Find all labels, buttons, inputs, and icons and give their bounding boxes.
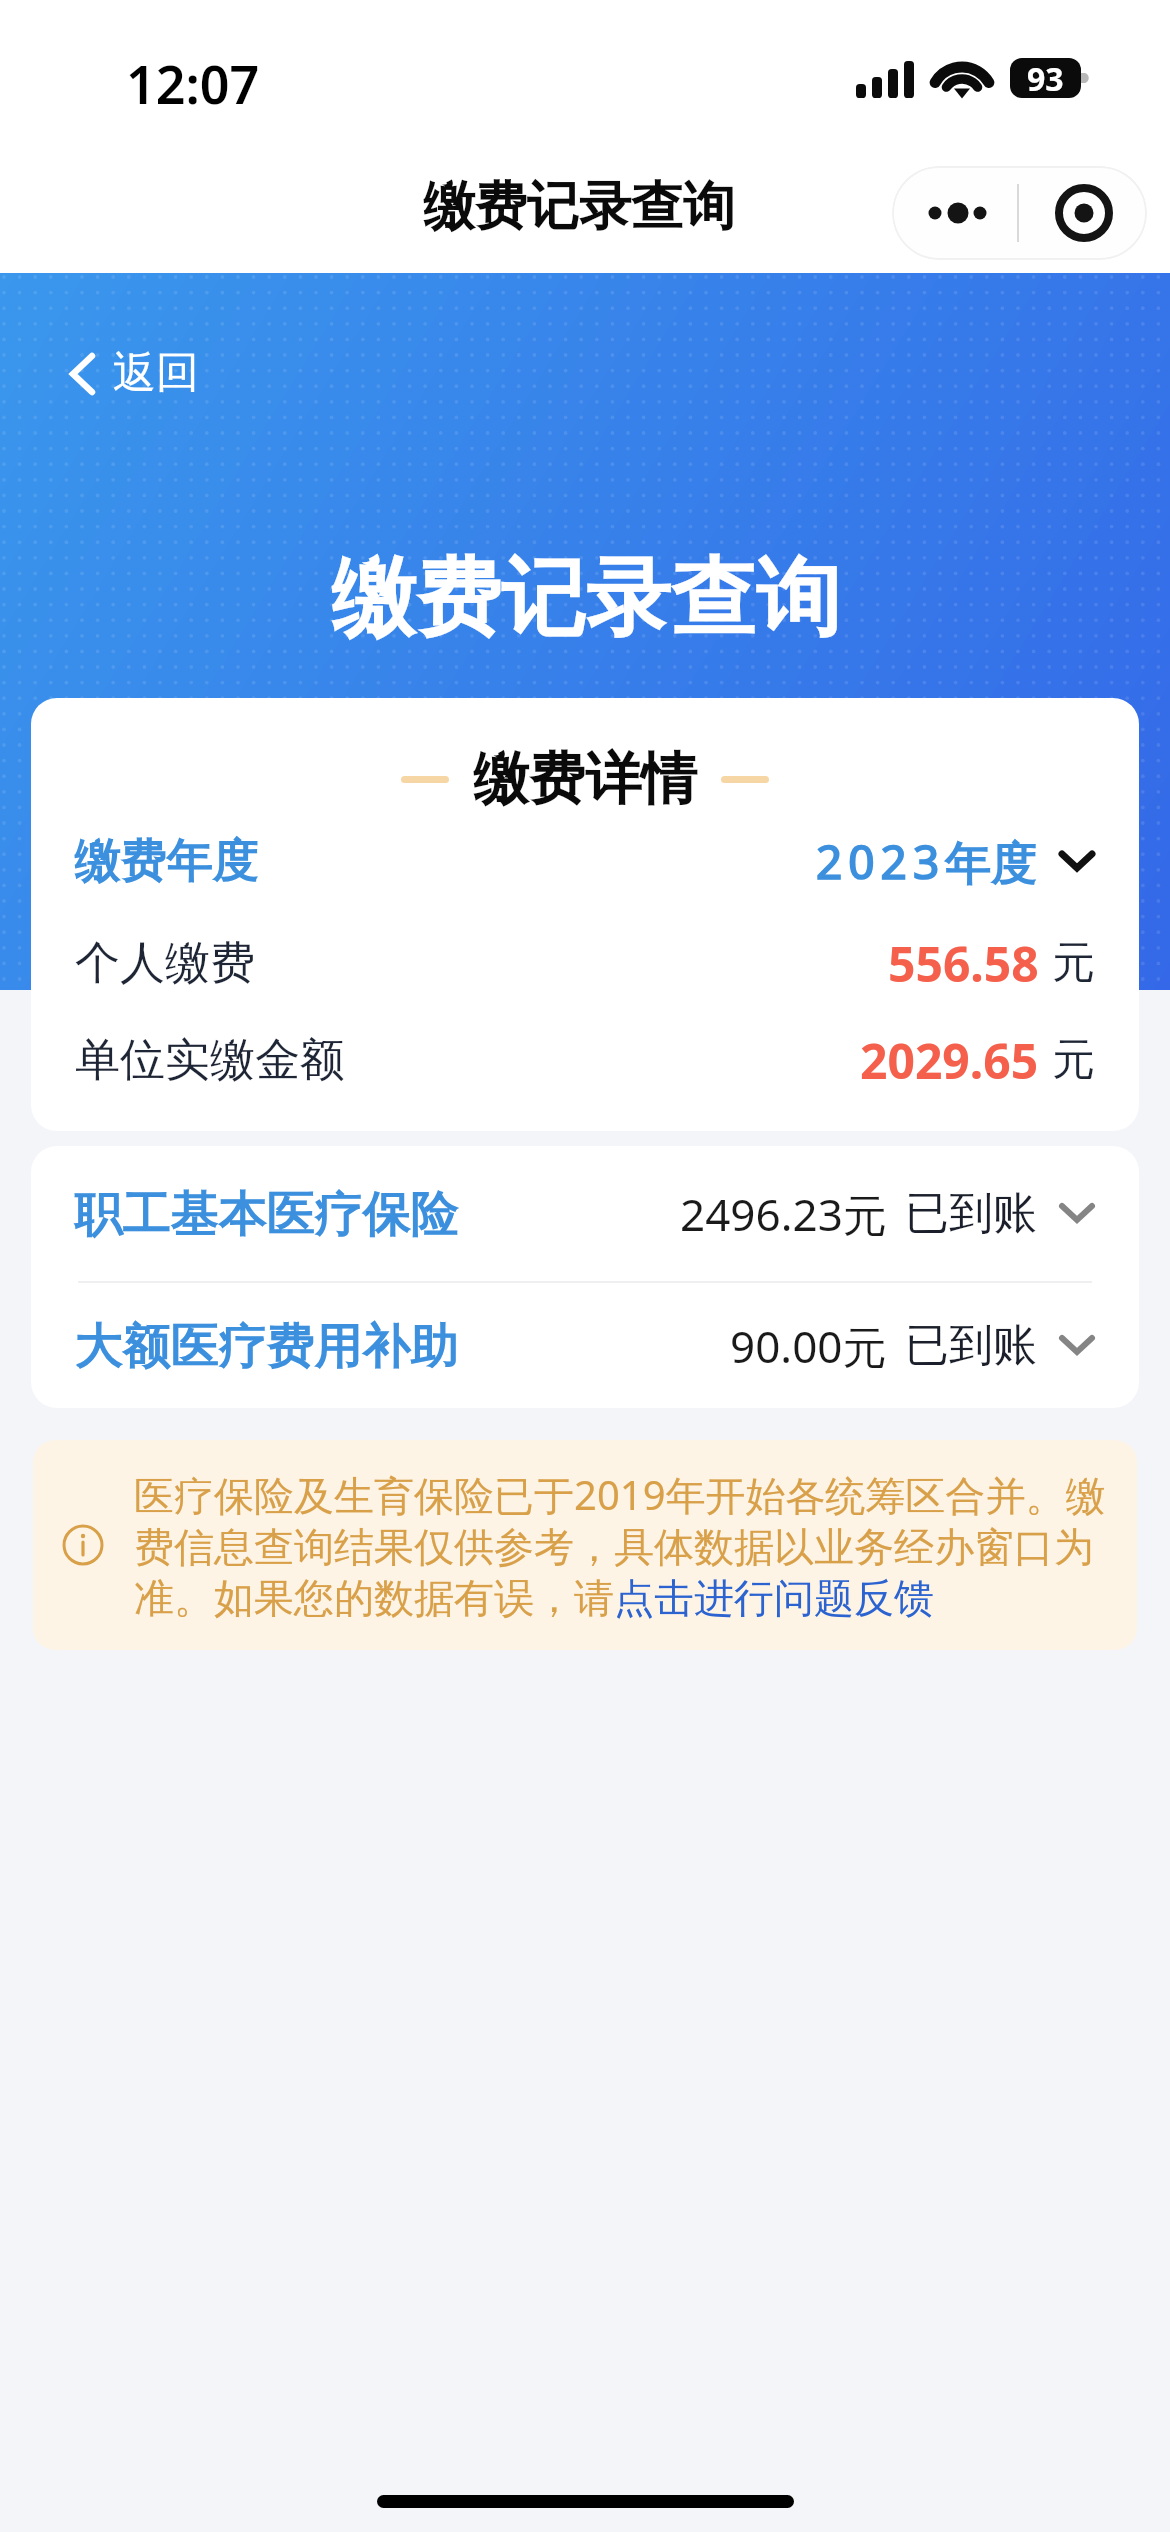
staticText: 2023年度 [816,830,1038,893]
staticText: 职工基本医疗保险 [75,1184,459,1244]
staticText: 医疗保险及生育保险已于2019年开始各统筹区合并。缴 费信息查询结果仅供参考，具… [134,1467,1107,1624]
button[interactable]: Back [64,339,205,409]
staticText: 12:07 [126,48,260,119]
staticText: 90.00元 [730,1316,887,1376]
staticText: 大额医疗费用补助 [75,1316,459,1376]
staticText: 93 [1027,58,1064,97]
staticText: 缴费详情 [473,744,697,815]
staticText: 返回 [113,346,199,400]
staticText: 556.58 [888,931,1039,996]
staticText: 缴费记录查询 [423,174,735,240]
staticText: 缴费年度 [75,832,259,890]
staticText: 2029.65 [860,1028,1039,1093]
button[interactable]: 点击进行问题反馈 [621,1571,943,1621]
staticText: 单位实缴金额 [75,1032,345,1089]
staticText: 2023年度 [816,830,1038,893]
staticText: 已到账 [905,1186,1037,1241]
staticText: 元 [1052,936,1095,990]
staticText: 职工基本医疗保险 [75,1184,459,1244]
button[interactable]: Menu and close mini program [892,166,1147,260]
staticText: 缴费记录查询 [331,545,841,652]
staticText: 元 [1052,1033,1095,1087]
staticText: 个人缴费 [75,935,255,992]
staticText: 缴费年度 [75,832,259,890]
button[interactable]: 缴费年度 [31,812,1139,910]
staticText: 已到账 [905,1318,1037,1373]
button[interactable]: 大额医疗费用补助 [31,1283,1139,1408]
staticText: 大额医疗费用补助 [75,1316,459,1376]
staticText: 2496.23元 [680,1184,887,1244]
button[interactable]: 职工基本医疗保险 [31,1146,1139,1281]
